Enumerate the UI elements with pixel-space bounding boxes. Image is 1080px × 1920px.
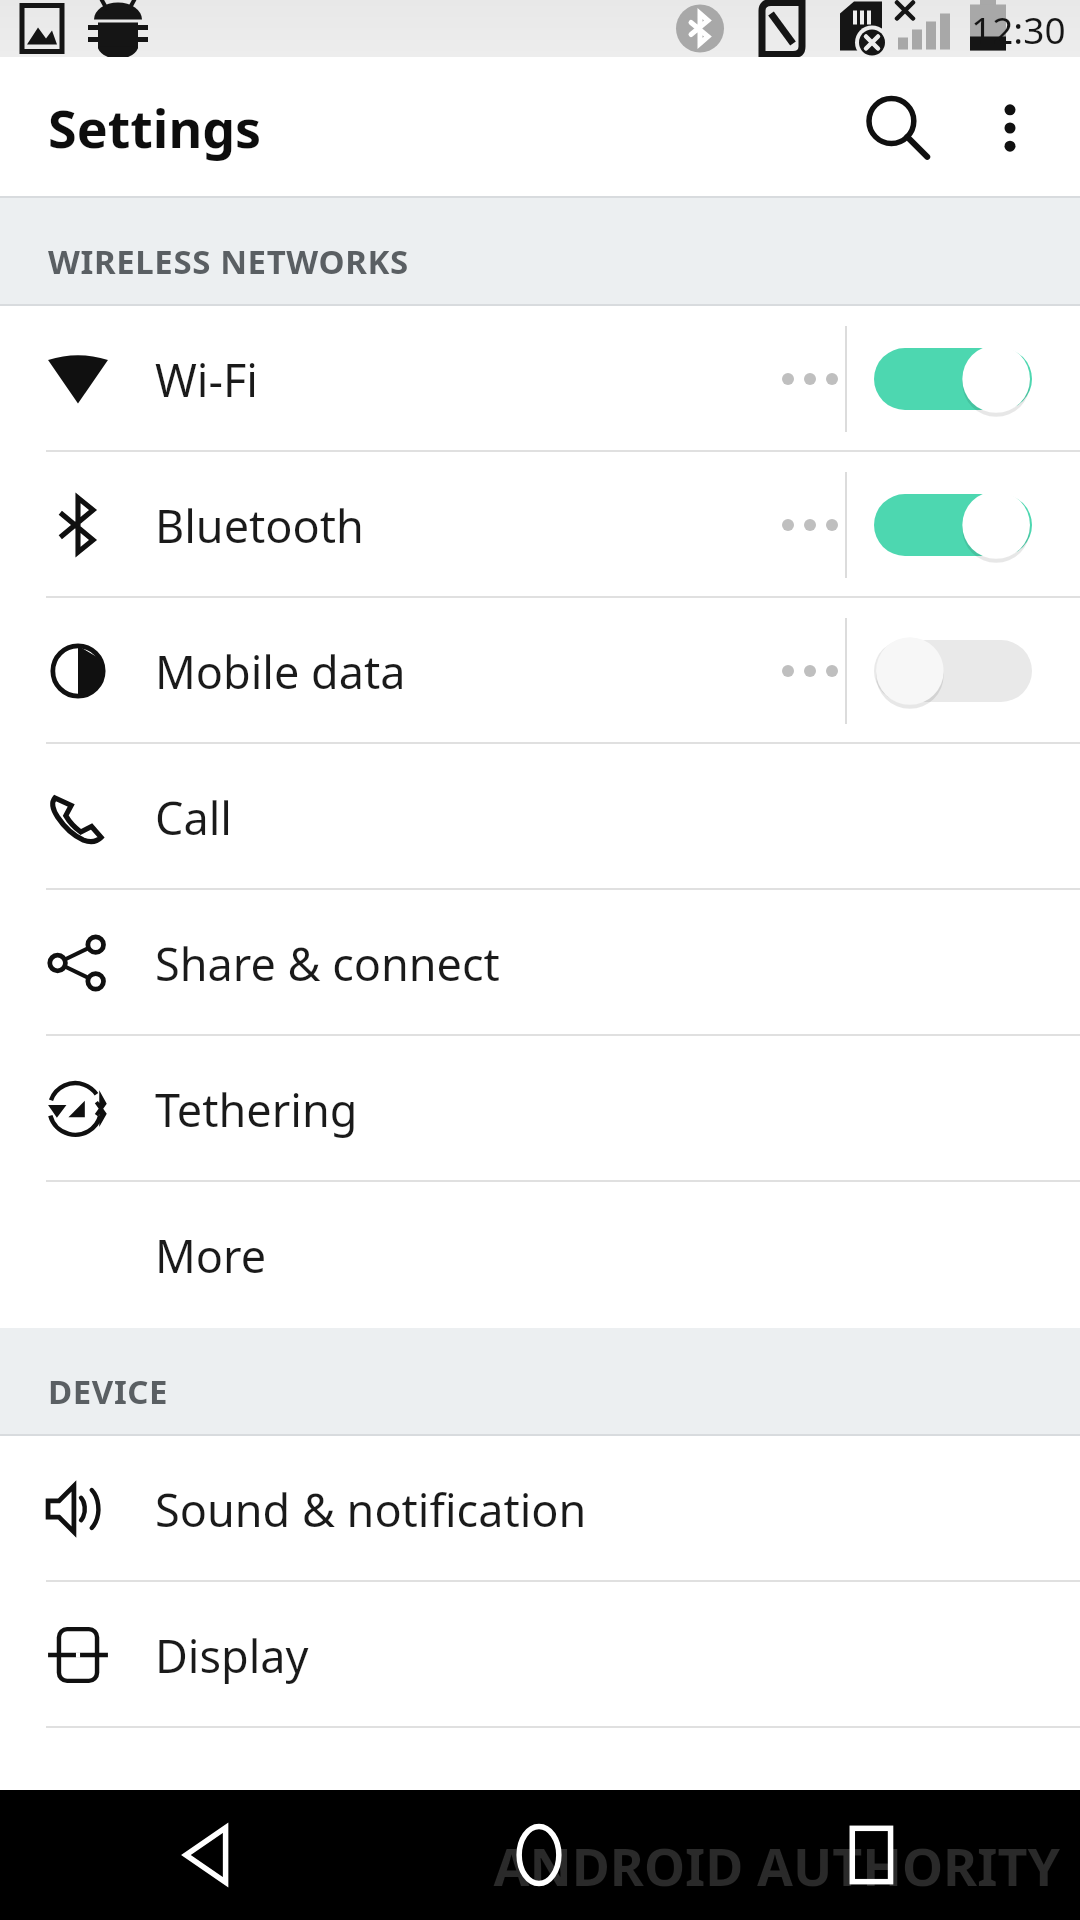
staticText: Bluetooth (155, 495, 364, 556)
button[interactable]: Sound & notification (0, 1436, 1080, 1582)
button[interactable]: Share & connect (0, 890, 1080, 1036)
button[interactable]: Home (469, 1790, 609, 1920)
staticText: Call (155, 787, 232, 848)
button[interactable]: Wi-Fi (0, 306, 1080, 452)
button[interactable]: Tethering (0, 1036, 1080, 1182)
staticText: 12:30 (971, 4, 1066, 54)
staticText: Display (155, 1625, 309, 1686)
button[interactable]: Display (0, 1582, 1080, 1728)
button[interactable]: Back (137, 1790, 277, 1920)
button[interactable]: More (0, 1182, 1080, 1328)
staticText: DEVICE (48, 1369, 169, 1414)
button[interactable]: Bluetooth (0, 452, 1080, 598)
staticText: Mobile data (155, 641, 406, 702)
button[interactable]: Call (0, 744, 1080, 890)
button[interactable]: Mobile data (0, 598, 1080, 744)
staticText: Sound & notification (155, 1479, 587, 1540)
staticText: Settings (48, 92, 262, 163)
staticText: ANDROID AUTHORITY (493, 1830, 1060, 1901)
staticText: WIRELESS NETWORKS (48, 239, 409, 284)
button[interactable]: More options (960, 78, 1060, 178)
button[interactable]: Mobile data switch (874, 635, 1032, 707)
staticText: More (155, 1225, 267, 1286)
button[interactable]: Bluetooth switch (874, 489, 1032, 561)
button[interactable]: Recent apps (802, 1790, 942, 1920)
staticText: Tethering (155, 1079, 358, 1140)
staticText: Wi-Fi (155, 349, 258, 410)
button[interactable]: Search (842, 73, 952, 183)
staticText: Share & connect (155, 933, 500, 994)
button[interactable]: Wi-Fi switch (874, 343, 1032, 415)
